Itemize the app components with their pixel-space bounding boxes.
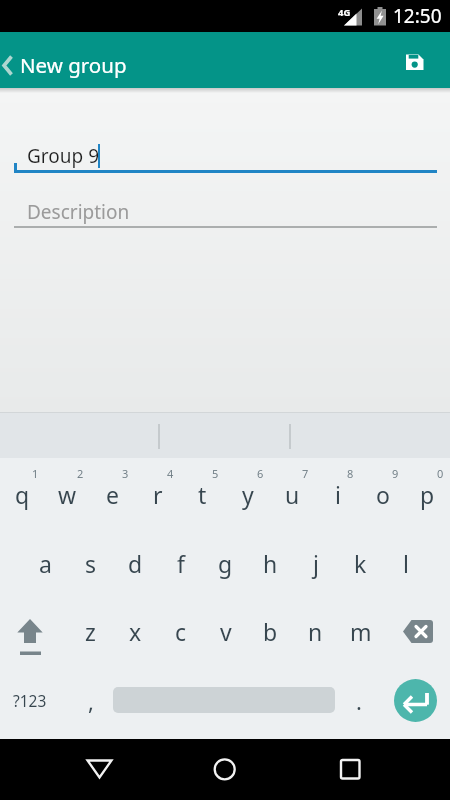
staticText: g [218,548,233,579]
button[interactable]: , [68,669,113,733]
button[interactable] [0,32,18,88]
staticText: 12:50 [393,3,442,29]
button[interactable]: y [225,462,270,526]
button[interactable]: k [338,531,383,595]
staticText: p [420,479,435,510]
button[interactable]: u [270,462,315,526]
button[interactable]: l [383,531,428,595]
staticText: e [106,479,119,510]
staticText: 8 [347,466,354,481]
button[interactable]: t [180,462,225,526]
staticText: 4 [167,466,174,481]
staticText: s [85,548,97,579]
staticText: 0 [437,466,444,481]
button[interactable]: f [158,531,203,595]
button[interactable] [390,598,450,662]
button[interactable]: d [113,531,158,595]
staticText: 4G [338,6,351,19]
staticText: ?123 [13,690,47,711]
button[interactable]: b [248,599,293,663]
button[interactable]: n [293,599,338,663]
button[interactable]: w [45,462,90,526]
staticText: a [39,548,52,579]
button[interactable]: j [293,531,338,595]
staticText: u [285,479,300,510]
staticText: j [313,548,319,579]
button[interactable]: c [158,599,203,663]
button[interactable] [200,745,250,795]
staticText: w [58,479,77,510]
button[interactable]: p [405,462,450,526]
staticText: y [242,479,254,510]
staticText: c [175,616,187,647]
staticText: h [263,548,278,579]
button[interactable]: a [23,531,68,595]
button[interactable]: x [113,599,158,663]
button[interactable] [0,598,60,662]
staticText: 6 [257,466,264,481]
button[interactable] [325,745,375,795]
staticText: i [335,479,341,510]
button[interactable]: o [360,462,405,526]
staticText: 3 [122,466,129,481]
button[interactable]: h [248,531,293,595]
staticText: k [354,548,367,579]
staticText: q [15,479,30,510]
button[interactable]: Description [14,192,437,228]
button[interactable]: v [203,599,248,663]
staticText: d [128,548,143,579]
button[interactable]: e [90,462,135,526]
staticText: o [376,479,390,510]
staticText: Description [27,199,130,225]
staticText: m [350,616,372,647]
staticText: 7 [302,466,309,481]
button[interactable]: r [135,462,180,526]
staticText: , [88,686,94,716]
staticText: 5 [212,466,219,481]
staticText: 9 [392,466,399,481]
button[interactable]: Group 9 [14,134,437,174]
button[interactable] [75,745,125,795]
button[interactable]: ?123 [0,668,60,732]
staticText: . [356,686,362,716]
button[interactable]: q [0,462,45,526]
staticText: f [177,548,185,579]
staticText: v [220,616,232,647]
button[interactable] [394,679,437,722]
staticText: t [198,479,207,510]
staticText: Group 9 [27,143,100,169]
button[interactable]: i [315,462,360,526]
button[interactable]: . [336,669,381,733]
staticText: z [85,616,96,647]
button[interactable] [394,36,438,84]
button[interactable]: z [68,599,113,663]
button[interactable]: s [68,531,113,595]
staticText: x [129,616,142,647]
staticText: l [403,548,409,579]
button[interactable]: m [338,599,383,663]
staticText: r [153,479,163,510]
staticText: 1 [32,466,39,481]
staticText: n [308,616,323,647]
staticText: b [263,616,278,647]
staticText: 2 [77,466,84,481]
button[interactable]: g [203,531,248,595]
staticText: New group [20,51,127,79]
